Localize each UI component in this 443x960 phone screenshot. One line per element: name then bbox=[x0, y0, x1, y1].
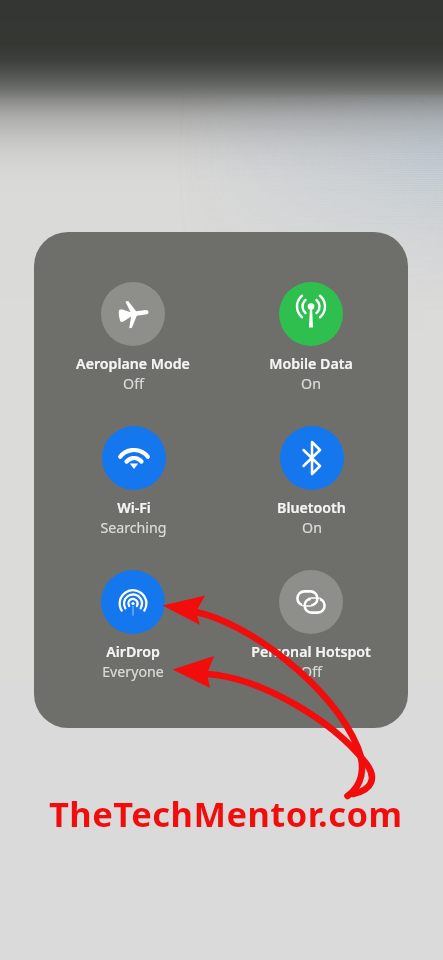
button[interactable]: Wi-Fi bbox=[44, 418, 222, 548]
button[interactable]: Mobile Data bbox=[222, 274, 400, 404]
staticText: On bbox=[302, 518, 322, 537]
staticText: Off bbox=[301, 662, 322, 681]
staticText: TheTechMentor.com bbox=[49, 790, 403, 837]
button[interactable]: Personal Hotspot bbox=[222, 562, 400, 692]
staticText: Aeroplane Mode bbox=[76, 354, 190, 373]
staticText: Personal Hotspot bbox=[251, 642, 371, 661]
button[interactable]: Bluetooth bbox=[222, 418, 400, 548]
staticText: On bbox=[301, 374, 321, 393]
staticText: Off bbox=[123, 374, 144, 393]
staticText: Searching bbox=[100, 518, 167, 537]
button[interactable]: AirDrop bbox=[44, 562, 222, 692]
staticText: Wi-Fi bbox=[117, 498, 151, 517]
staticText: Bluetooth bbox=[277, 498, 346, 517]
button[interactable]: Aeroplane Mode bbox=[44, 274, 222, 404]
staticText: Everyone bbox=[102, 662, 164, 681]
staticText: Mobile Data bbox=[269, 354, 353, 373]
staticText: AirDrop bbox=[106, 642, 160, 661]
